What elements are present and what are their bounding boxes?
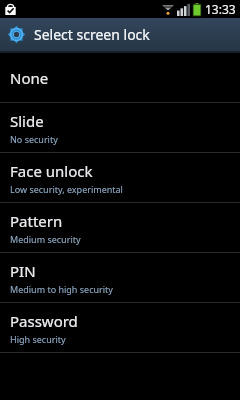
staticText: No security: [10, 133, 58, 145]
button[interactable]: Face unlock: [0, 153, 240, 202]
staticText: 13:33: [205, 1, 236, 17]
staticText: PIN: [10, 261, 36, 281]
button[interactable]: Password: [0, 303, 240, 352]
button[interactable]: Pattern: [0, 203, 240, 252]
button[interactable]: None: [0, 53, 240, 102]
button[interactable]: PIN: [0, 253, 240, 302]
staticText: Pattern: [10, 211, 63, 231]
staticText: Medium security: [10, 233, 81, 245]
staticText: Low security, experimental: [10, 183, 123, 195]
staticText: Password: [10, 311, 78, 331]
button[interactable]: Slide: [0, 103, 240, 152]
staticText: None: [10, 68, 49, 88]
button[interactable]: Settings: [0, 18, 240, 51]
staticText: Slide: [10, 111, 44, 131]
staticText: Select screen lock: [34, 25, 150, 44]
staticText: Face unlock: [10, 161, 93, 181]
staticText: Medium to high security: [10, 283, 113, 295]
other: Settings: [7, 25, 26, 44]
staticText: High security: [10, 333, 66, 345]
